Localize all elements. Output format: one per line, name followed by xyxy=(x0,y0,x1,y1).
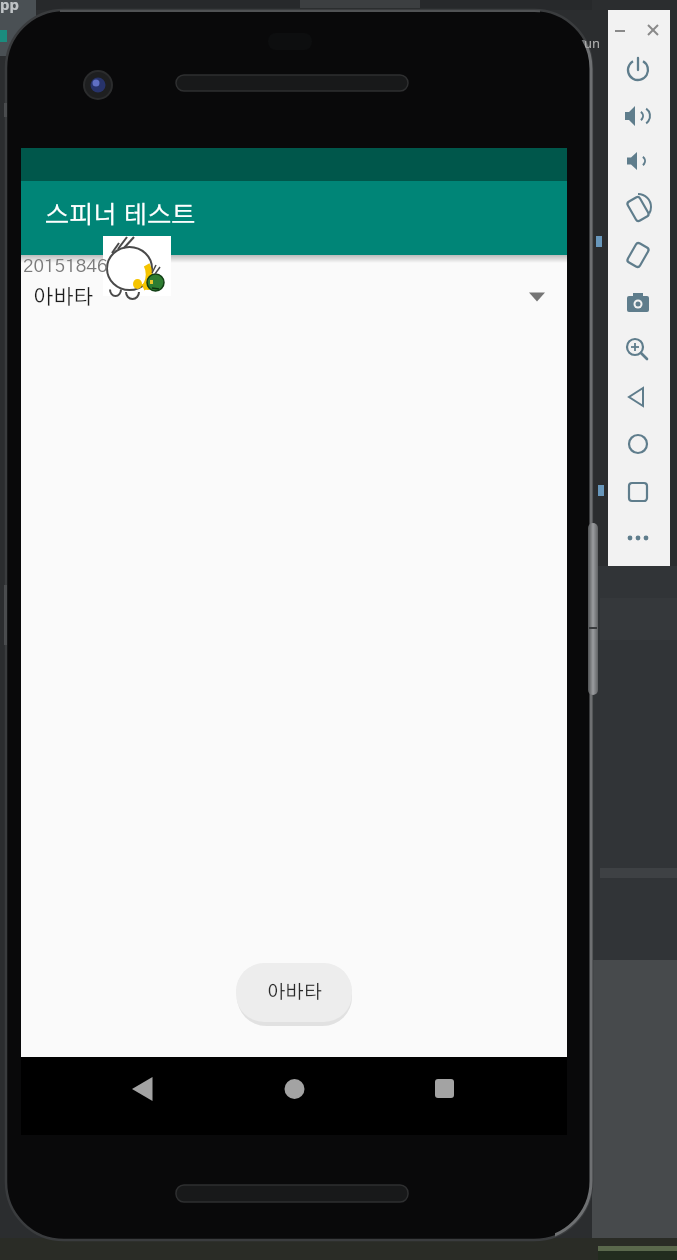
button[interactable] xyxy=(620,520,656,556)
staticText: pp xyxy=(0,0,19,14)
button[interactable] xyxy=(612,20,630,38)
staticText: 아바타 xyxy=(33,287,94,308)
button[interactable] xyxy=(620,52,656,88)
button[interactable] xyxy=(644,20,662,38)
button[interactable]: 아바타 xyxy=(21,272,567,320)
staticText: 아바타 xyxy=(267,983,322,1002)
button[interactable] xyxy=(620,143,656,179)
button[interactable] xyxy=(119,1065,167,1113)
button[interactable]: 아바타 xyxy=(236,963,352,1022)
staticText: un xyxy=(584,34,601,52)
button[interactable] xyxy=(620,474,656,510)
button[interactable] xyxy=(620,426,656,462)
button[interactable] xyxy=(421,1065,469,1113)
button[interactable] xyxy=(620,379,656,415)
button[interactable] xyxy=(620,285,656,321)
button[interactable] xyxy=(620,98,656,134)
staticText: 20151846 xyxy=(23,257,108,276)
button[interactable] xyxy=(620,237,656,273)
button[interactable] xyxy=(620,332,656,368)
button[interactable] xyxy=(620,191,656,227)
button[interactable] xyxy=(270,1065,318,1113)
staticText: 스피너 테스트 xyxy=(45,203,196,228)
